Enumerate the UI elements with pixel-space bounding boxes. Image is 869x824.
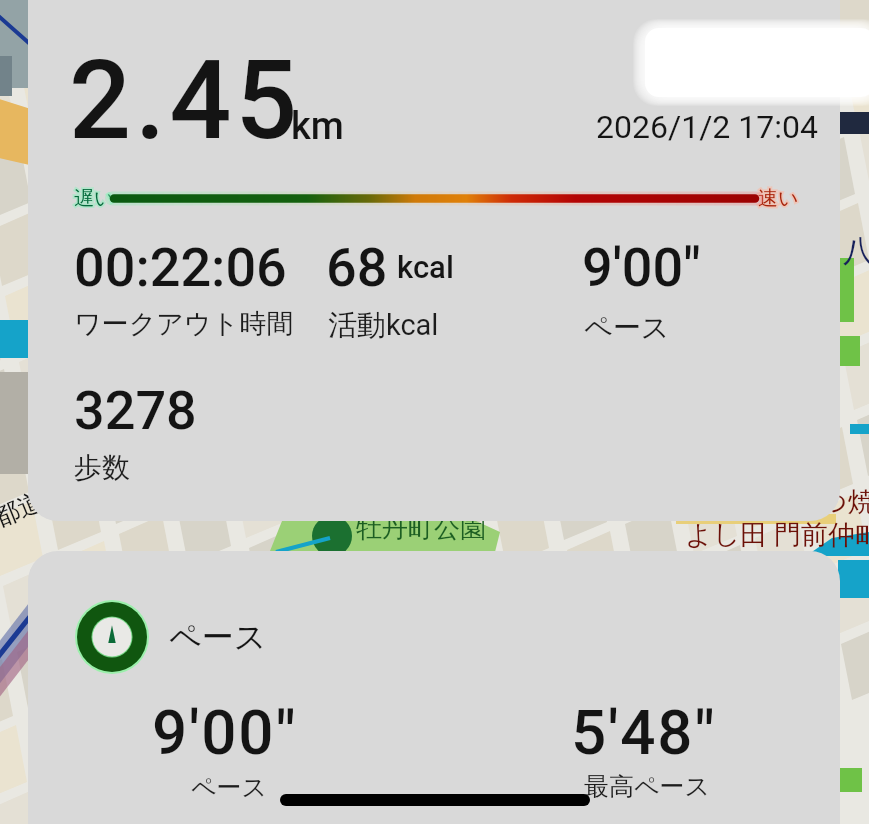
staticText: ペース <box>584 310 670 345</box>
staticText: 八 <box>843 232 869 270</box>
staticText: 遅い <box>74 186 115 211</box>
button[interactable]: Pace <box>75 600 149 674</box>
staticText: 9'00" <box>582 236 701 299</box>
staticText: kcal <box>397 249 454 285</box>
staticText: 9'00" <box>152 696 298 769</box>
staticText: 速い <box>758 186 799 211</box>
staticText: よし田 門前仲町店 <box>685 518 869 552</box>
staticText: 00:22:06 <box>74 236 287 299</box>
staticText: 最高ペース <box>584 771 711 802</box>
staticText: 5'48" <box>571 696 717 769</box>
staticText: 牡丹町公園 <box>356 512 486 545</box>
button[interactable] <box>28 0 840 521</box>
staticText: 歩数 <box>74 450 130 485</box>
staticText: つ焼き <box>820 485 869 519</box>
staticText: 都道4 <box>0 479 63 534</box>
staticText: ペース <box>169 617 267 657</box>
staticText: 68 <box>326 236 388 299</box>
staticText: 遅い <box>74 186 115 211</box>
staticText: ワークアウト時間 <box>74 307 294 341</box>
staticText: km <box>291 104 344 149</box>
staticText: 活動kcal <box>328 307 439 344</box>
staticText: 2026/1/2 17:04 <box>596 108 818 146</box>
staticText: 3278 <box>74 379 197 442</box>
staticText: ペース <box>191 772 268 803</box>
staticText: 2.45 <box>69 37 302 165</box>
staticText: 速い <box>758 186 799 211</box>
button[interactable] <box>28 551 840 824</box>
